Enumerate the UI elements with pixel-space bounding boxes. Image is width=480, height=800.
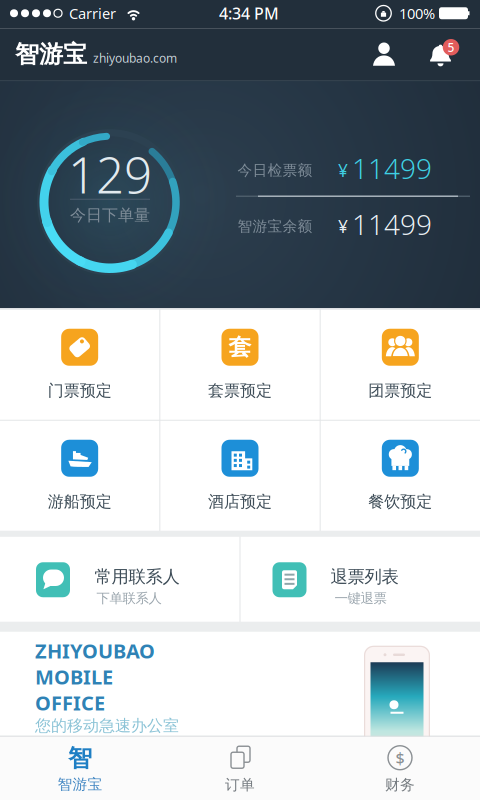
button[interactable]: 退票列表 — [240, 537, 480, 622]
button[interactable]: 餐饮预定 — [321, 421, 480, 531]
staticText: 常用联系人 — [94, 566, 179, 587]
button[interactable]: 游船预定 — [0, 421, 159, 531]
staticText: Carrier — [69, 3, 116, 23]
button[interactable]: 常用联系人 — [0, 537, 239, 622]
button[interactable]: 酒店预定 — [160, 421, 320, 531]
button[interactable]: ZHIYOUBAO — [0, 632, 480, 736]
staticText: 财务 — [385, 776, 415, 794]
staticText: 餐饮预定 — [368, 492, 432, 511]
button[interactable]: 智游宝 — [15, 39, 177, 69]
staticText: 套票预定 — [208, 381, 272, 400]
button[interactable]: Notifications — [425, 38, 459, 70]
staticText: 5 — [447, 39, 454, 55]
staticText: 游船预定 — [48, 492, 112, 511]
staticText: 今日下单量 — [70, 205, 150, 225]
staticText: ¥ — [338, 215, 348, 238]
staticText: $ — [395, 747, 404, 768]
staticText: ¥ — [338, 159, 348, 182]
staticText: 智游宝 — [57, 775, 102, 793]
staticText: 订单 — [225, 776, 255, 794]
staticText: MOBILE — [35, 663, 113, 690]
staticText: 100% — [399, 3, 435, 23]
button[interactable]: 门票预定 — [0, 310, 159, 420]
staticText: zhiyoubao.com — [93, 50, 177, 66]
button[interactable]: 订单 — [160, 737, 320, 800]
staticText: 11499 — [352, 206, 432, 243]
button[interactable]: $ — [320, 737, 480, 800]
staticText: 下单联系人 — [96, 590, 161, 606]
staticText: OFFICE — [35, 689, 105, 716]
staticText: 套 — [228, 333, 251, 361]
staticText: 门票预定 — [48, 381, 112, 400]
button[interactable]: Account — [371, 42, 396, 66]
staticText: 酒店预定 — [208, 492, 272, 511]
staticText: ZHIYOUBAO — [35, 637, 155, 664]
button[interactable]: 套 — [160, 310, 320, 420]
staticText: 11499 — [352, 150, 432, 187]
staticText: 一键退票 — [334, 590, 386, 606]
button[interactable]: 团票预定 — [321, 310, 480, 420]
staticText: 今日检票额 — [237, 161, 312, 179]
staticText: 智 — [68, 743, 92, 773]
staticText: 退票列表 — [330, 566, 398, 587]
staticText: 4:34 PM — [219, 3, 279, 24]
button[interactable]: 智 — [0, 737, 160, 800]
staticText: 129 — [68, 141, 152, 207]
staticText: 团票预定 — [368, 381, 432, 400]
staticText: 您的移动急速办公室 — [35, 716, 179, 736]
staticText: 智游宝余额 — [237, 217, 312, 235]
staticText: 智游宝 — [15, 39, 87, 69]
